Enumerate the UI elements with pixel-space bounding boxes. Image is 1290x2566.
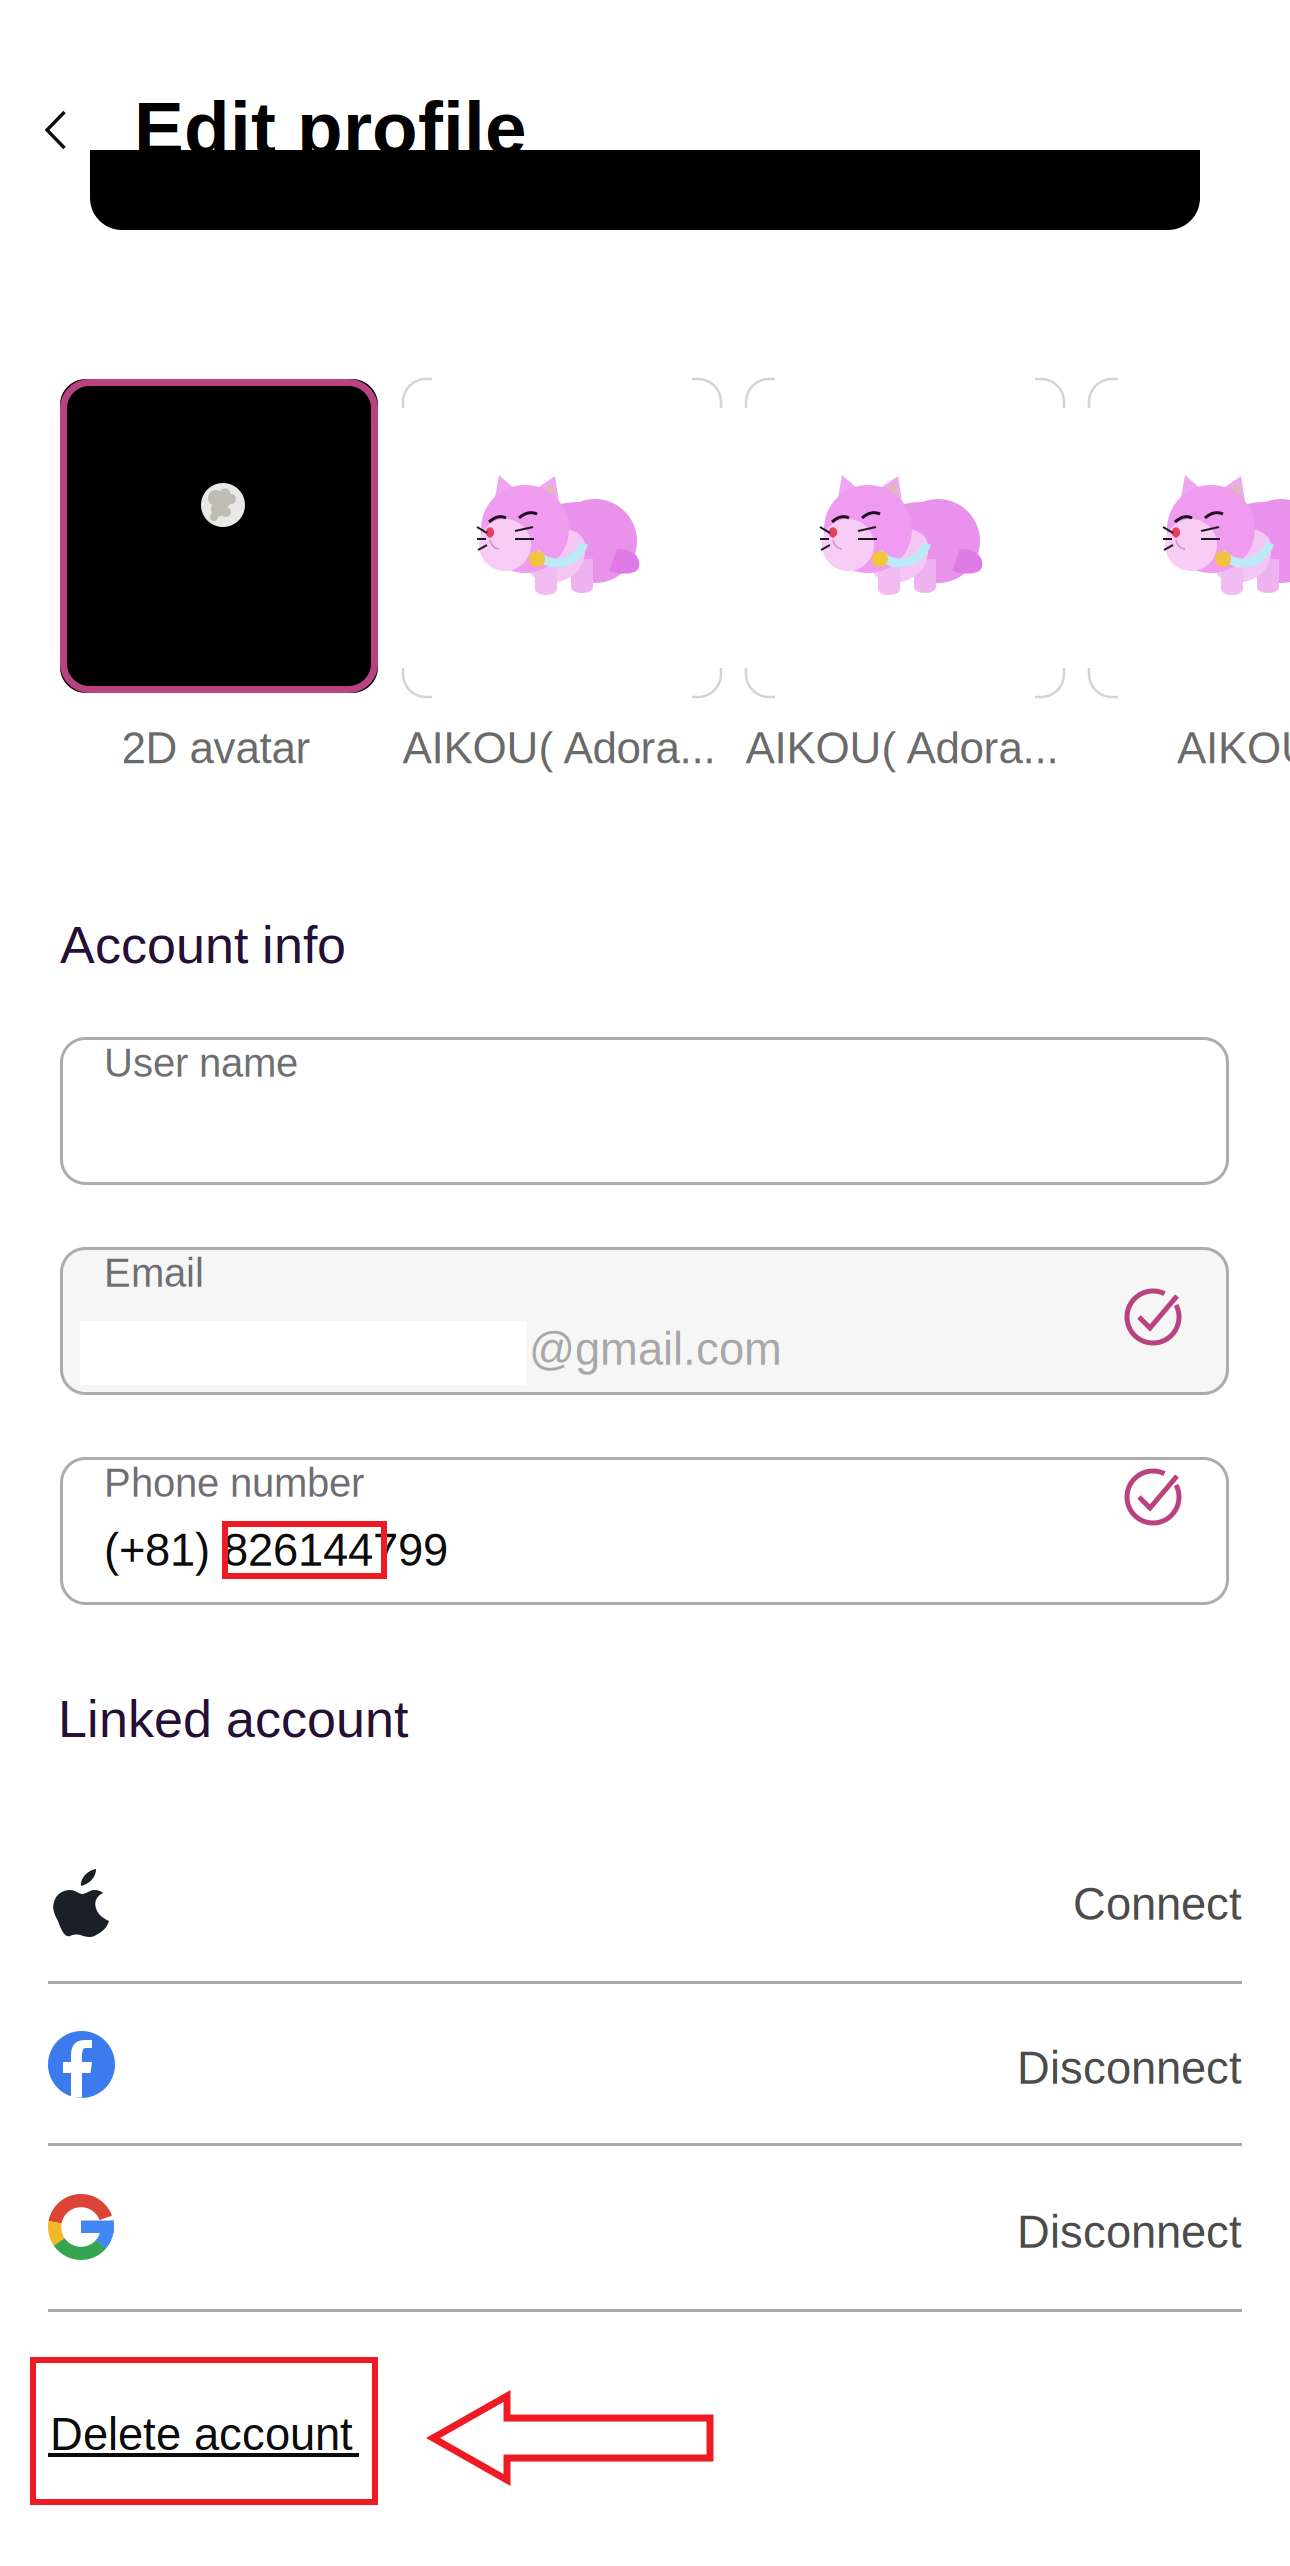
staticText: (+81) 826144799 [104,1525,448,1575]
button[interactable]: Connect [0,1818,1290,1982]
staticText: Phone number [104,1461,364,1505]
staticText: Account info [60,916,346,974]
button[interactable]: Disconnect [0,1982,1290,2146]
button[interactable]: AIKOU [1089,379,1290,779]
staticText: Edit profile [134,86,527,170]
staticText: AIKOU( Adora... [402,723,715,773]
staticText: 2D avatar [121,723,310,773]
staticText: Delete account [50,2409,353,2460]
staticText: AIKOU [1177,723,1290,773]
button[interactable]: Disconnect [0,2146,1290,2310]
staticText: Disconnect [1017,2207,1242,2257]
staticText: @gmail.com [529,1324,782,1374]
staticText: Disconnect [1017,2043,1242,2093]
button[interactable]: AIKOU( Adora... [403,379,721,779]
button[interactable]: AIKOU( Adora... [746,379,1064,779]
button[interactable]: Delete account [50,2409,380,2465]
button[interactable]: Back [0,89,112,171]
staticText: User name [104,1041,298,1085]
staticText: Connect [1073,1879,1242,1929]
button[interactable]: 2D avatar [60,379,378,779]
staticText: AIKOU( Adora... [745,723,1058,773]
staticText: Email [104,1251,204,1295]
staticText: Linked account [58,1690,408,1748]
